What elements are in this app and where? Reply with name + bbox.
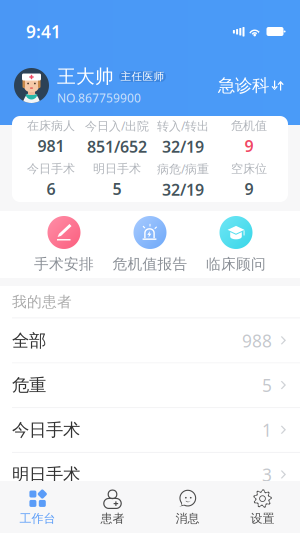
button[interactable]: 临床顾问 [193,216,279,273]
staticText: 消息 [175,511,199,526]
button[interactable]: 设置 [225,481,300,533]
staticText: 全部 [12,330,46,351]
staticText: 我的患者 [12,293,72,311]
staticText: 1 [262,418,272,441]
button[interactable]: 急诊科 [218,75,285,96]
staticText: NO.867759900 [57,90,141,106]
staticText: 9 [244,135,253,156]
button[interactable]: 患者 [75,481,150,533]
staticText: 转入/转出 [157,118,209,134]
staticText: 危机值 [231,118,267,133]
button[interactable]: 手术安排 [21,216,107,273]
button[interactable]: 危重 [0,363,300,408]
button[interactable]: 消息 [150,481,225,533]
staticText: 6 [46,178,55,199]
staticText: 5 [112,178,121,199]
staticText: 32/19 [162,179,204,200]
staticText: 32/19 [162,136,204,157]
staticText: 988 [242,329,272,352]
staticText: 9:41 [26,20,61,43]
staticText: 今日入/出院 [85,118,149,134]
staticText: 临床顾问 [206,255,266,273]
button[interactable]: 全部 [0,319,300,363]
staticText: 手术安排 [34,255,94,273]
staticText: 9 [244,178,253,199]
staticText: 明日手术 [12,464,80,485]
staticText: 今日手术 [27,161,75,176]
staticText: 851/652 [87,136,147,157]
staticText: 王大帅 [57,65,114,88]
button[interactable]: 危机值报告 [107,216,193,273]
staticText: 3 [262,463,272,486]
staticText: 981 [37,135,64,156]
staticText: 患者 [100,511,124,526]
staticText: 病危/病重 [157,161,209,177]
button[interactable]: 工作台 [0,481,75,533]
staticText: 急诊科 [218,75,269,96]
staticText: 今日手术 [12,419,80,441]
staticText: 明日手术 [93,161,141,176]
staticText: 危重 [12,375,46,396]
staticText: 主任医师 [120,70,164,83]
staticText: 工作台 [19,511,55,526]
staticText: 危机值报告 [112,255,187,273]
staticText: 设置 [250,511,274,526]
button[interactable]: 明日手术 [0,453,300,498]
button[interactable]: 今日手术 [0,408,300,453]
staticText: 空床位 [231,161,267,176]
staticText: 5 [262,374,272,397]
staticText: 在床病人 [27,118,75,133]
